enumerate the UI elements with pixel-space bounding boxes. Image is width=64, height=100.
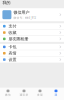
button[interactable]: 微信用户 — [0, 8, 64, 21]
staticText: 设置 — [8, 57, 16, 62]
button[interactable]: 设置 — [0, 57, 64, 63]
staticText: 我 — [54, 93, 57, 96]
button[interactable]: 朋友圈相册 — [0, 36, 64, 42]
button[interactable]: 卡包 — [0, 44, 64, 50]
staticText: 微信 — [5, 93, 11, 96]
button[interactable]: 发现 — [32, 88, 48, 100]
staticText: 收藏 — [8, 30, 16, 35]
staticText: 支付 — [8, 24, 16, 29]
button[interactable]: 我 — [48, 88, 64, 100]
button[interactable]: 收藏 — [0, 30, 64, 36]
staticText: 微信用户 — [14, 10, 30, 15]
button[interactable]: 通讯录 — [16, 88, 32, 100]
staticText: 发现 — [37, 93, 43, 96]
staticText: 表情 — [8, 51, 16, 56]
staticText: 卡包 — [8, 44, 16, 49]
staticText: 微信号: wxid_8f2 — [14, 16, 37, 19]
button[interactable]: 支付 — [0, 23, 64, 29]
button[interactable]: 表情 — [0, 50, 64, 56]
staticText: 通讯录 — [19, 93, 28, 96]
staticText: 朋友圈相册 — [8, 36, 28, 41]
staticText: 我的 — [2, 0, 10, 5]
button[interactable]: 微信 — [0, 88, 16, 100]
